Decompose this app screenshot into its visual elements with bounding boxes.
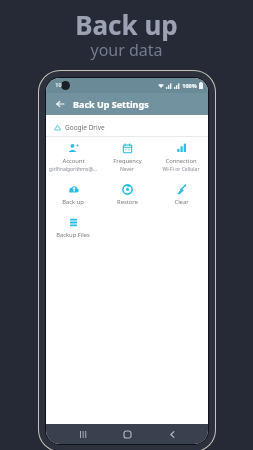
button[interactable]: Back bbox=[52, 96, 68, 112]
staticText: 10 bbox=[55, 81, 62, 88]
staticText: Clear bbox=[174, 198, 189, 206]
button[interactable]: Google Drive bbox=[46, 120, 208, 134]
staticText: Wi-Fi or Cellular bbox=[156, 166, 206, 173]
staticText: Never bbox=[102, 166, 152, 173]
button[interactable]: Account bbox=[46, 141, 100, 175]
staticText: Frequency bbox=[113, 157, 142, 165]
button[interactable]: Backup Files bbox=[46, 215, 100, 241]
button[interactable]: Restore bbox=[100, 182, 154, 208]
staticText: 100% bbox=[182, 82, 197, 89]
staticText: Back up bbox=[75, 7, 178, 42]
staticText: Back Up Settings bbox=[73, 98, 149, 110]
staticText: Account bbox=[62, 157, 85, 165]
button[interactable]: Back up bbox=[46, 182, 100, 208]
staticText: your data bbox=[90, 39, 163, 61]
button[interactable]: Home bbox=[119, 426, 135, 442]
staticText: Google Drive bbox=[65, 123, 105, 132]
button[interactable]: Recents bbox=[75, 426, 91, 442]
staticText: Restore bbox=[117, 198, 138, 206]
staticText: Connection bbox=[165, 157, 197, 165]
button[interactable]: Back bbox=[164, 426, 180, 442]
button[interactable]: Connection bbox=[154, 141, 208, 175]
button[interactable]: Clear bbox=[154, 182, 208, 208]
staticText: girlfinalgorithms@... bbox=[48, 166, 98, 173]
staticText: Backup Files bbox=[56, 231, 90, 239]
button[interactable]: Frequency bbox=[100, 141, 154, 175]
staticText: Back up bbox=[62, 198, 84, 206]
